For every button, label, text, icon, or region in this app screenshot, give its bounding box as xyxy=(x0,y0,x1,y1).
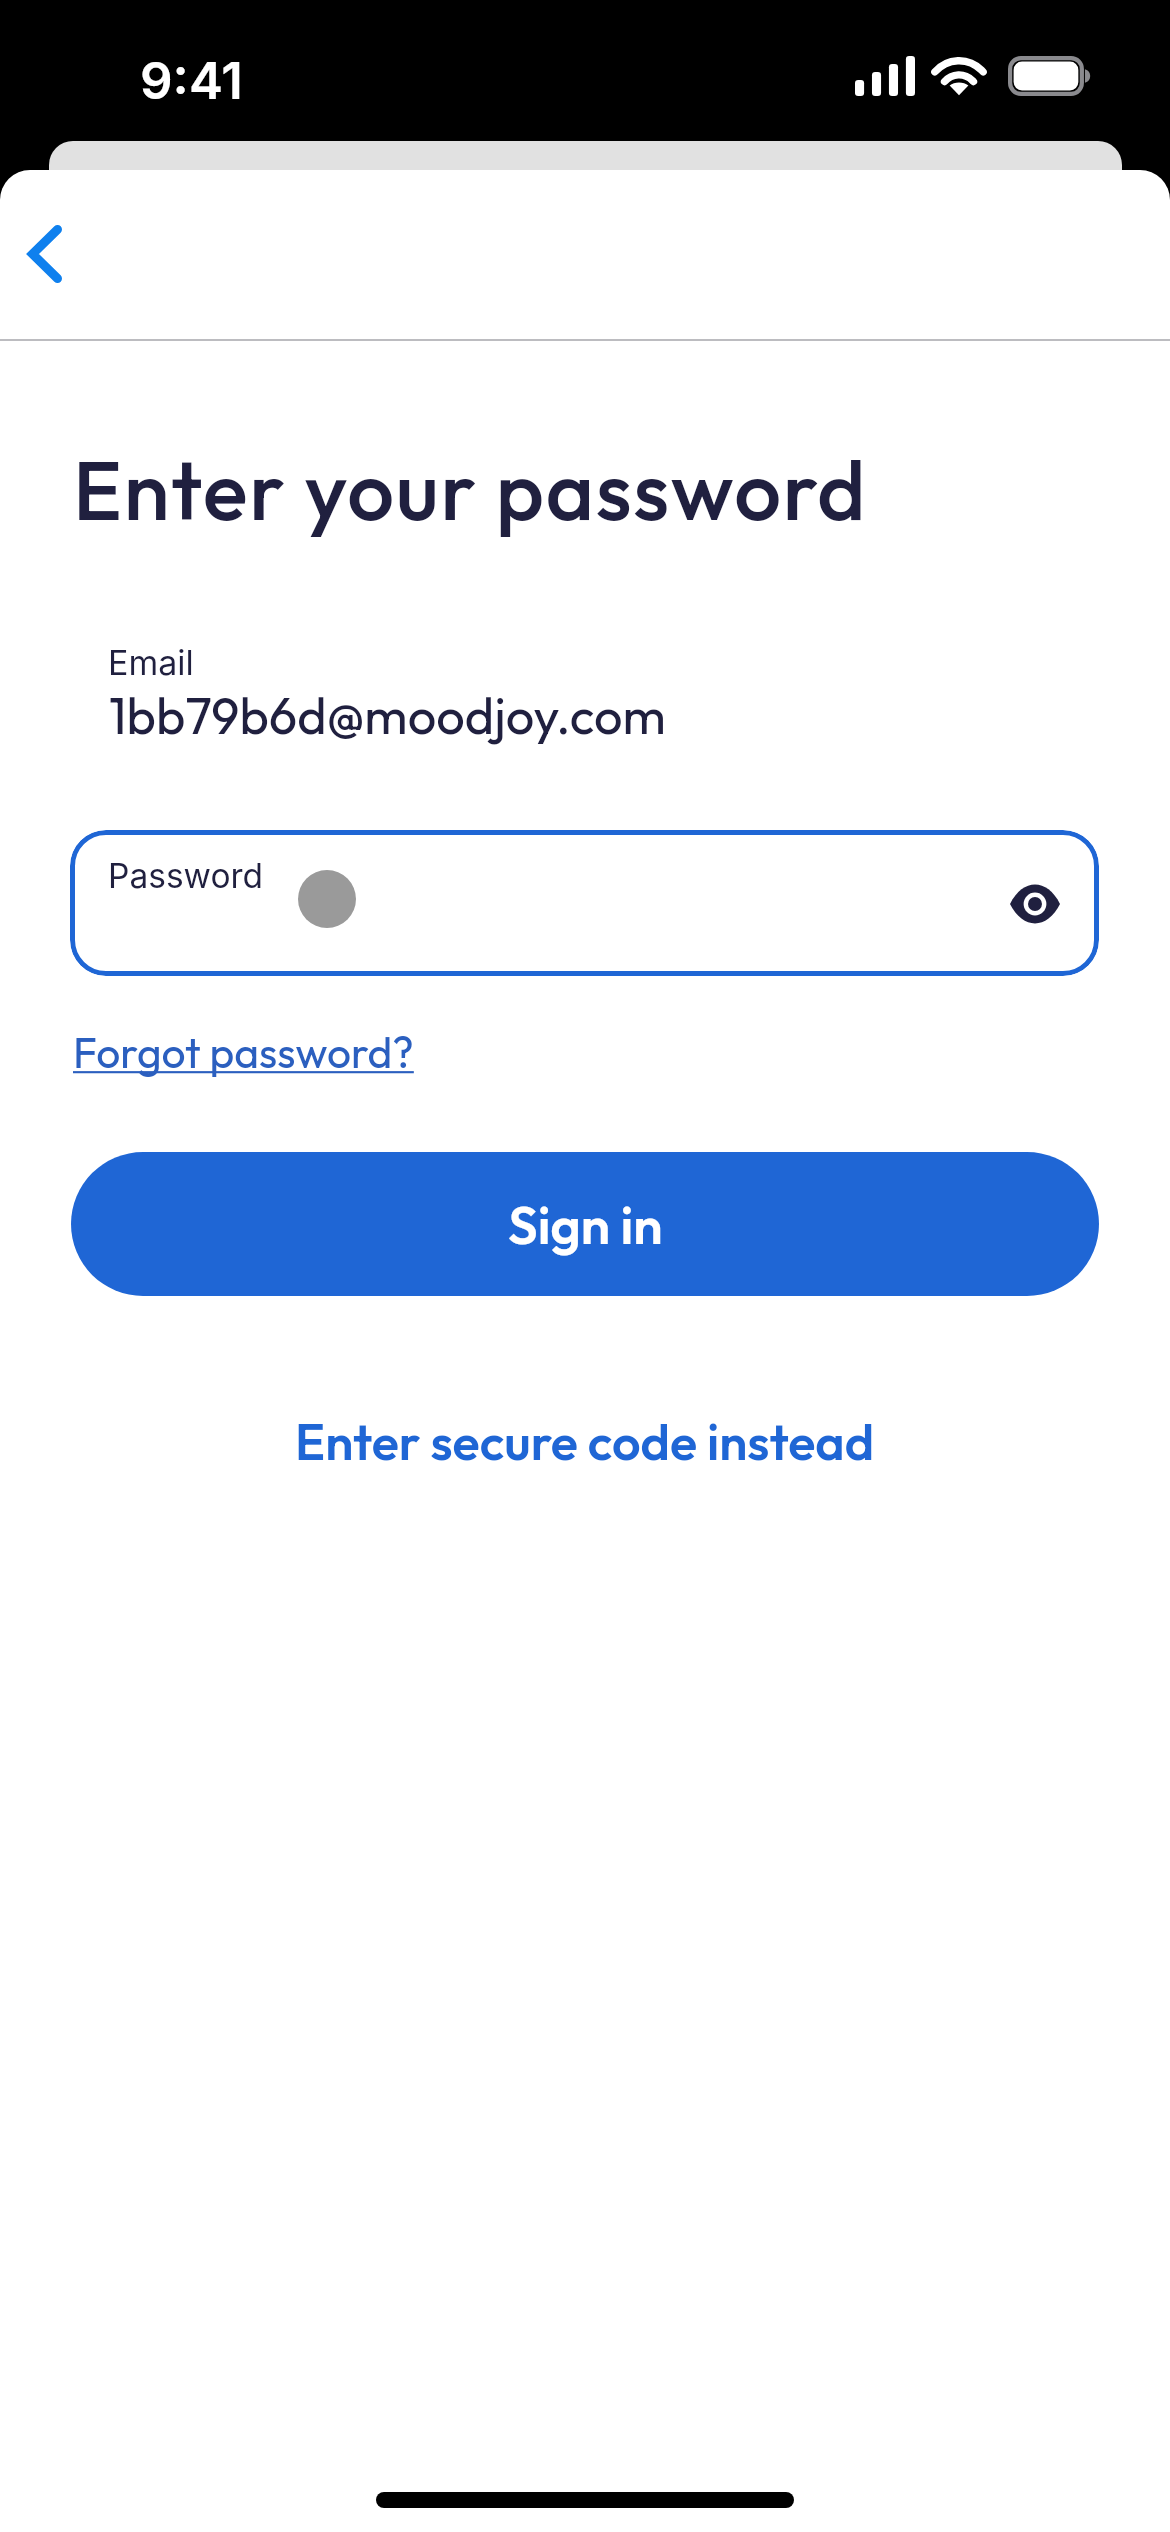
staticText: 1bb79b6d@moodjoy.com xyxy=(109,683,666,747)
staticText: Email xyxy=(108,642,194,683)
button[interactable]: Enter secure code instead xyxy=(295,1410,875,1473)
staticText: 9:41 xyxy=(140,50,243,112)
staticText: Enter secure code instead xyxy=(295,1410,875,1473)
staticText: Password xyxy=(108,856,264,897)
button[interactable]: Forgot password? xyxy=(73,1025,414,1079)
button[interactable]: Back xyxy=(0,180,90,300)
staticText: Sign in xyxy=(508,1191,663,1257)
button[interactable]: Password xyxy=(70,830,1099,976)
button[interactable]: Sign in xyxy=(71,1152,1099,1296)
staticText: Forgot password? xyxy=(73,1025,414,1079)
staticText: Enter your password xyxy=(73,437,868,542)
